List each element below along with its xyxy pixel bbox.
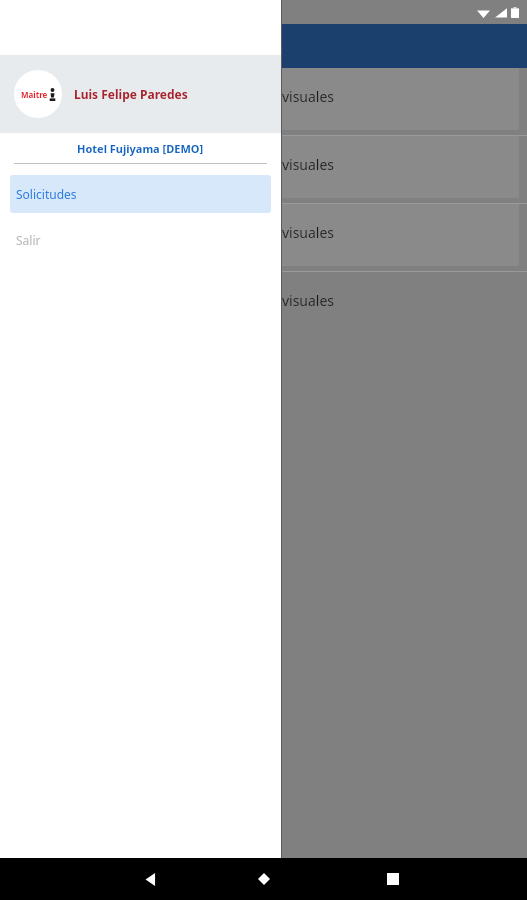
button[interactable]: Solicitudes (10, 175, 271, 213)
button[interactable]: Hotel Fujiyama [DEMO] (0, 133, 281, 163)
staticText: Salir (16, 232, 41, 248)
button[interactable]: audiovisuales (0, 68, 527, 136)
button[interactable]: Salir (10, 221, 271, 259)
button[interactable]: Recent apps (371, 858, 415, 900)
button[interactable]: Home (242, 858, 286, 900)
staticText: audiovisuales (245, 223, 335, 242)
button[interactable]: audiovisuales (0, 204, 527, 272)
button[interactable]: Maitre (0, 55, 281, 133)
staticText: audiovisuales (245, 291, 335, 310)
staticText: audiovisuales (245, 87, 335, 106)
button[interactable]: Back (128, 858, 172, 900)
staticText: Maitre (21, 89, 48, 100)
staticText: Luis Felipe Paredes (74, 86, 188, 102)
staticText: Hotel Fujiyama [DEMO] (77, 141, 204, 156)
staticText: Solicitudes (16, 186, 77, 202)
button[interactable]: audiovisuales (0, 272, 527, 340)
button[interactable]: audiovisuales (0, 136, 527, 204)
staticText: audiovisuales (245, 155, 335, 174)
